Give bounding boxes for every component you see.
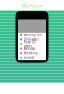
staticText: Stretching xyxy=(24,51,38,55)
button[interactable]: Read 20 pages xyxy=(18,42,46,46)
staticText: Read 20 pages xyxy=(24,40,36,48)
button[interactable]: Stretching xyxy=(18,51,46,55)
staticText: Meditate xyxy=(24,47,36,50)
staticText: Journal xyxy=(24,56,34,59)
staticText: Drink water xyxy=(24,38,39,41)
staticText: My Habits xyxy=(22,3,42,8)
button[interactable]: Journal xyxy=(18,55,46,60)
button[interactable]: Morning run xyxy=(18,32,46,37)
button[interactable]: Meditate xyxy=(18,46,46,51)
button[interactable]: Drink water xyxy=(18,37,46,42)
staticText: Morning run xyxy=(24,33,42,36)
